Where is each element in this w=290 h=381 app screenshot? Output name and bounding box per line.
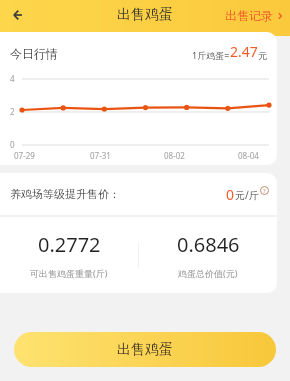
button[interactable]: 出售鸡蛋 — [14, 332, 276, 367]
staticText: ? — [263, 187, 266, 195]
staticText: 出售鸡蛋 — [117, 6, 173, 24]
staticText: 08-02 — [164, 150, 201, 161]
staticText: 出售鸡蛋 — [117, 341, 173, 359]
button[interactable]: 出售记录 — [225, 8, 284, 23]
staticText: 07-29 — [14, 150, 52, 161]
staticText: 0 — [10, 139, 15, 150]
staticText: 4 — [10, 73, 15, 84]
staticText: 07-31 — [90, 150, 127, 161]
staticText: 出售记录 — [225, 8, 273, 23]
button[interactable]: Help — [226, 185, 269, 204]
staticText: 2.47 — [230, 42, 258, 61]
staticText: 可出售鸡蛋重量(斤) — [30, 267, 108, 279]
staticText: 今日行情 — [10, 46, 58, 61]
staticText: 0.2772 — [38, 231, 101, 258]
staticText: 0 — [226, 185, 235, 204]
staticText: 元/斤 — [235, 188, 259, 202]
staticText: 鸡蛋总价值(元) — [178, 267, 238, 279]
button[interactable]: Back — [6, 1, 34, 29]
staticText: 养鸡场等级提升售价： — [10, 187, 120, 201]
staticText: 1斤鸡蛋= — [192, 49, 230, 61]
staticText: 2 — [10, 106, 15, 117]
staticText: 08-04 — [238, 150, 275, 161]
staticText: 0.6846 — [177, 231, 240, 258]
staticText: 元 — [258, 50, 267, 61]
